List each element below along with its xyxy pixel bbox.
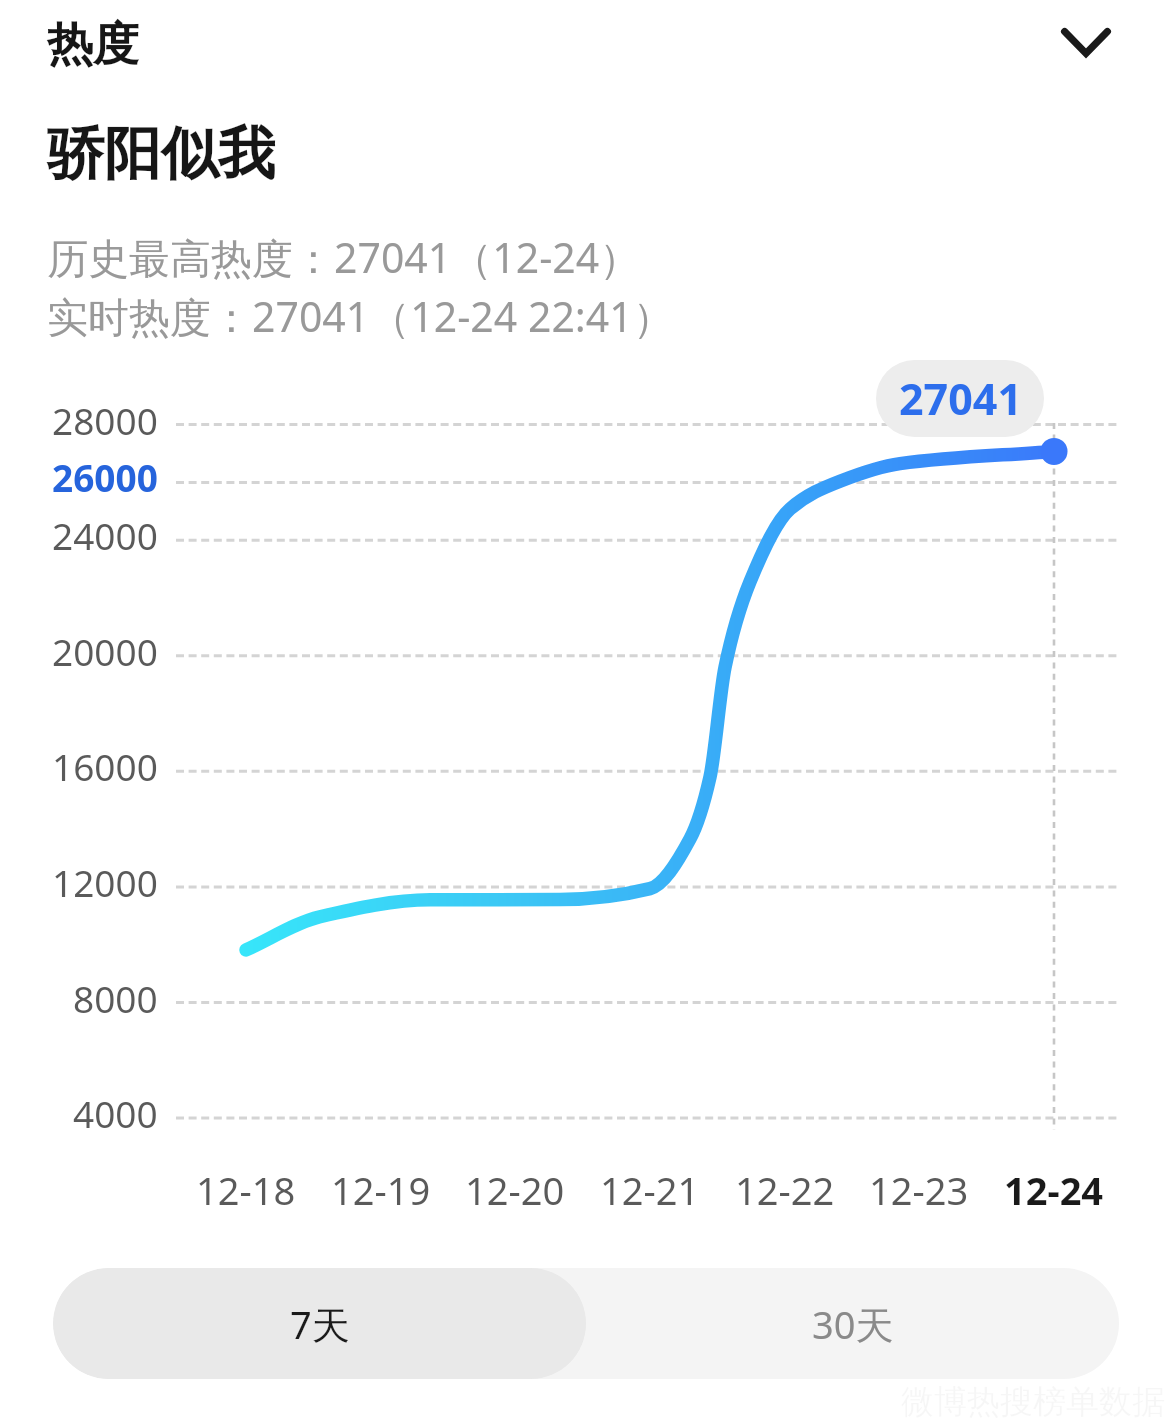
staticText: 24000 (52, 510, 158, 560)
staticText: 12-23 (869, 1164, 969, 1216)
button[interactable]: 30天 (586, 1268, 1119, 1379)
staticText: 骄阳似我 (47, 118, 275, 190)
staticText: 28000 (52, 395, 158, 445)
staticText: 12-22 (735, 1164, 835, 1216)
staticText: 16000 (52, 741, 158, 791)
staticText: 12-20 (465, 1164, 565, 1216)
staticText: 7天 (290, 1298, 350, 1350)
staticText: 热度 (47, 16, 139, 74)
staticText: 30天 (812, 1298, 894, 1350)
staticText: 8000 (73, 973, 158, 1023)
staticText: 实时热度：27041（12-24 22:41） (47, 288, 674, 344)
staticText: 12-18 (196, 1164, 296, 1216)
staticText: 历史最高热度：27041（12-24） (47, 229, 641, 285)
button[interactable]: 7天 (53, 1268, 586, 1379)
staticText: 12-24 (1004, 1164, 1104, 1216)
staticText: 20000 (52, 626, 158, 676)
staticText: 26000 (52, 452, 158, 502)
staticText: 27041 (899, 369, 1022, 428)
staticText: 12-21 (600, 1164, 700, 1216)
staticText: 微博热搜榜单数据 (901, 1381, 1165, 1423)
staticText: 12000 (52, 857, 158, 907)
button[interactable]: Collapse (1040, 6, 1132, 78)
staticText: 12-19 (331, 1164, 431, 1216)
staticText: 4000 (73, 1088, 158, 1138)
